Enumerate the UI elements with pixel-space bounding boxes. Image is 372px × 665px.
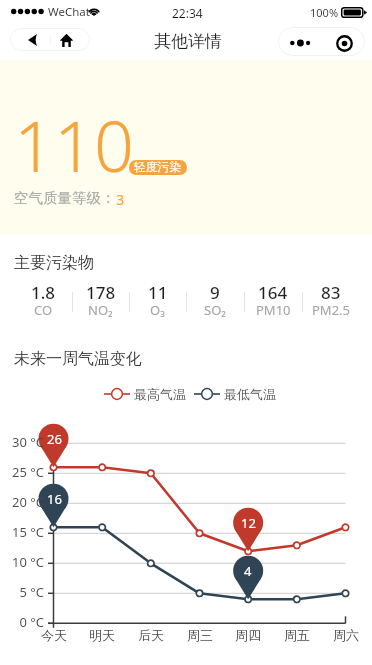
staticText: 周四 xyxy=(224,627,272,643)
staticText: 今天 xyxy=(30,627,78,643)
staticText: PM10 xyxy=(256,301,291,319)
staticText: 空气质量等级： xyxy=(14,189,116,207)
staticText: 16 xyxy=(47,490,62,508)
staticText: 4 xyxy=(244,562,252,580)
staticText: 83 xyxy=(321,281,341,304)
staticText: 178 xyxy=(86,281,116,304)
staticText: O₃ xyxy=(150,301,165,319)
staticText: 10 °C xyxy=(0,553,44,571)
staticText: NO₂ xyxy=(88,301,113,319)
staticText: 100% xyxy=(310,5,339,20)
staticText: 30 °C xyxy=(0,433,44,451)
button[interactable]: Back xyxy=(11,29,49,50)
staticText: 主要污染物 xyxy=(14,253,94,273)
staticText: 周六 xyxy=(322,627,370,643)
staticText: 明天 xyxy=(78,627,126,643)
staticText: 周三 xyxy=(176,627,224,643)
staticText: SO₂ xyxy=(204,301,226,319)
staticText: 1.8 xyxy=(31,281,56,304)
staticText: WeChat xyxy=(48,4,90,20)
staticText: 最低气温 xyxy=(224,386,276,402)
staticText: 轻度污染 xyxy=(134,160,182,175)
staticText: 周五 xyxy=(273,627,321,643)
staticText: 164 xyxy=(258,281,288,304)
staticText: 25 °C xyxy=(0,463,44,481)
staticText: 20 °C xyxy=(0,493,44,511)
staticText: 11 xyxy=(148,281,168,304)
staticText: 110 xyxy=(14,97,134,192)
staticText: 9 xyxy=(210,281,220,304)
staticText: 5 °C xyxy=(0,583,44,601)
staticText: 后天 xyxy=(127,627,175,643)
staticText: PM2.5 xyxy=(312,301,351,319)
staticText: CO xyxy=(34,301,53,319)
staticText: 22:34 xyxy=(172,5,203,21)
button[interactable]: Close mini program xyxy=(323,28,364,55)
staticText: 26 xyxy=(47,430,62,448)
staticText: 0 °C xyxy=(0,613,44,631)
staticText: 15 °C xyxy=(0,523,44,541)
staticText: 其他详情 xyxy=(154,31,222,52)
staticText: 最高气温 xyxy=(134,386,186,402)
staticText: 未来一周气温变化 xyxy=(14,349,142,369)
staticText: 12 xyxy=(241,514,256,532)
staticText: 3 xyxy=(116,189,125,209)
button[interactable]: Home xyxy=(52,29,89,50)
button[interactable]: More options xyxy=(280,28,321,55)
